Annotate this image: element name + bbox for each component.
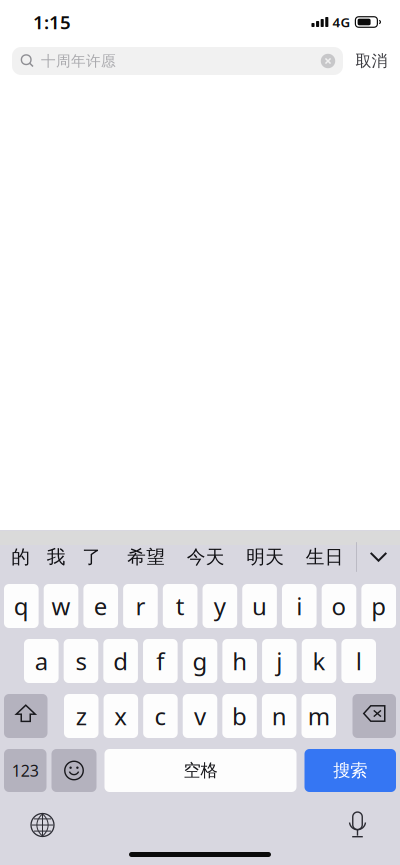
button[interactable]: Delete: [352, 694, 396, 738]
button[interactable]: k: [302, 639, 336, 683]
staticText: 了: [82, 545, 101, 568]
button[interactable]: l: [341, 639, 376, 683]
staticText: u: [252, 590, 267, 622]
button[interactable]: i: [282, 584, 317, 628]
staticText: h: [232, 645, 247, 677]
staticText: c: [154, 700, 166, 732]
button[interactable]: 希望: [116, 531, 176, 583]
staticText: 我: [47, 545, 66, 568]
staticText: 4G: [332, 13, 350, 31]
button[interactable]: d: [103, 639, 138, 683]
button[interactable]: o: [322, 584, 356, 628]
staticText: p: [371, 590, 386, 622]
staticText: i: [296, 590, 302, 622]
button[interactable]: Shift: [4, 694, 47, 738]
staticText: l: [356, 645, 362, 677]
button[interactable]: y: [203, 584, 237, 628]
button[interactable]: 123: [4, 749, 46, 792]
staticText: 搜索: [333, 760, 367, 781]
staticText: 123: [12, 760, 39, 781]
staticText: o: [331, 590, 346, 622]
button[interactable]: 了: [74, 531, 109, 583]
button[interactable]: 取消: [343, 44, 400, 78]
staticText: f: [156, 645, 164, 677]
staticText: g: [192, 645, 207, 677]
staticText: v: [194, 700, 206, 732]
button[interactable]: Clear text: [313, 47, 343, 75]
button[interactable]: f: [143, 639, 178, 683]
staticText: x: [114, 700, 127, 732]
button[interactable]: q: [4, 584, 39, 628]
button[interactable]: s: [64, 639, 98, 683]
button[interactable]: c: [143, 694, 178, 738]
staticText: w: [51, 590, 70, 622]
staticText: 希望: [127, 545, 165, 568]
button[interactable]: b: [222, 694, 257, 738]
button[interactable]: a: [24, 639, 59, 683]
button[interactable]: Dictation: [335, 805, 379, 845]
staticText: 1:15: [33, 10, 71, 34]
button[interactable]: g: [183, 639, 217, 683]
button[interactable]: z: [64, 694, 98, 738]
staticText: 十周年许愿: [41, 52, 116, 70]
button[interactable]: Hide keyboard: [357, 531, 400, 583]
staticText: s: [75, 645, 86, 677]
button[interactable]: 我: [38, 531, 74, 583]
staticText: d: [113, 645, 128, 677]
staticText: 的: [11, 545, 30, 568]
staticText: b: [232, 700, 247, 732]
button[interactable]: Next keyboard: [20, 805, 64, 845]
button[interactable]: 今天: [176, 531, 235, 583]
staticText: 明天: [246, 545, 284, 568]
button[interactable]: 搜索: [304, 749, 396, 792]
staticText: 空格: [183, 760, 217, 781]
button[interactable]: w: [44, 584, 78, 628]
staticText: n: [272, 700, 287, 732]
button[interactable]: r: [123, 584, 158, 628]
button[interactable]: m: [301, 694, 336, 738]
button[interactable]: t: [163, 584, 197, 628]
button[interactable]: 生日: [295, 531, 354, 583]
staticText: 取消: [355, 51, 387, 71]
button[interactable]: e: [83, 584, 118, 628]
button[interactable]: p: [361, 584, 396, 628]
staticText: e: [94, 590, 108, 622]
button[interactable]: j: [262, 639, 297, 683]
button[interactable]: x: [104, 694, 138, 738]
staticText: m: [308, 700, 330, 732]
button[interactable]: Emoji: [51, 749, 96, 792]
staticText: a: [35, 645, 48, 677]
staticText: r: [135, 590, 145, 622]
staticText: 生日: [306, 545, 344, 568]
button[interactable]: u: [242, 584, 277, 628]
staticText: k: [312, 645, 325, 677]
button[interactable]: 明天: [235, 531, 295, 583]
button[interactable]: 空格: [104, 749, 296, 792]
staticText: z: [76, 700, 87, 732]
staticText: t: [176, 590, 185, 622]
button[interactable]: 的: [3, 531, 38, 583]
staticText: 今天: [187, 545, 225, 568]
staticText: q: [14, 590, 29, 622]
button[interactable]: v: [183, 694, 217, 738]
button[interactable]: n: [262, 694, 296, 738]
staticText: j: [276, 645, 282, 677]
staticText: y: [214, 590, 226, 622]
button[interactable]: h: [222, 639, 257, 683]
